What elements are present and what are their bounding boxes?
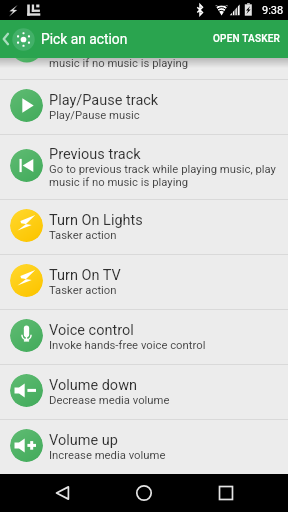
staticText: Decrease media volume [49, 394, 170, 407]
staticText: Tasker action [49, 229, 117, 242]
button[interactable]: Volume up [0, 420, 288, 474]
staticText: Go to previous track while playing music… [49, 163, 276, 189]
button[interactable]: OPEN TASKER [203, 23, 288, 55]
button[interactable]: Volume down [0, 365, 288, 419]
staticText: Voice control [49, 322, 134, 339]
button[interactable]: Previous track [0, 135, 288, 199]
staticText: Turn On Lights [49, 212, 143, 229]
button[interactable]: Home [125, 474, 163, 512]
staticText: Invoke hands-free voice control [49, 339, 206, 352]
staticText: OPEN TASKER [213, 33, 281, 45]
button[interactable]: Back [44, 474, 82, 512]
staticText: music if no music is playing [49, 58, 189, 70]
staticText: Volume down [49, 377, 138, 394]
staticText: Turn On TV [49, 267, 121, 284]
staticText: Tasker action [49, 284, 117, 297]
staticText: Pick an action [41, 31, 128, 47]
button[interactable]: Turn On Lights [0, 200, 288, 254]
staticText: Play/Pause music [49, 109, 140, 122]
staticText: Previous track [49, 146, 141, 163]
button[interactable]: Back [0, 20, 12, 58]
staticText: 9:38 [262, 4, 284, 17]
button[interactable]: Recent apps [207, 474, 245, 512]
button[interactable]: Turn On TV [0, 255, 288, 309]
staticText: Play/Pause track [49, 92, 159, 109]
staticText: Volume up [49, 432, 118, 449]
staticText: Increase media volume [49, 449, 166, 462]
button[interactable]: Play/Pause track [0, 80, 288, 134]
button[interactable]: Voice control [0, 310, 288, 364]
button[interactable]: music if no music is playing [0, 58, 288, 79]
